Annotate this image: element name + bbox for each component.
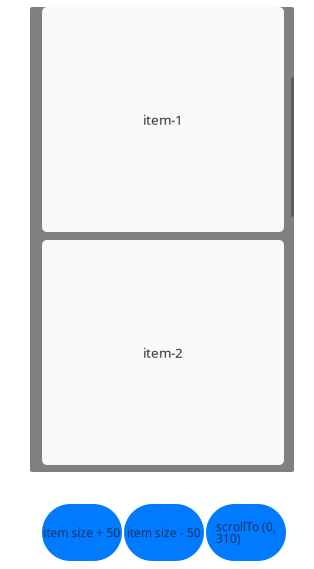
staticText: item-2	[143, 344, 183, 361]
staticText: scrollTo (0, 310)	[216, 519, 276, 546]
button[interactable]: item size - 50	[124, 504, 204, 561]
button[interactable]: item size + 50	[42, 504, 122, 561]
button[interactable]: scrollTo (0, 310)	[206, 504, 286, 561]
staticText: item size - 50	[127, 524, 201, 540]
staticText: item size + 50	[43, 524, 120, 540]
staticText: item-1	[143, 111, 183, 128]
